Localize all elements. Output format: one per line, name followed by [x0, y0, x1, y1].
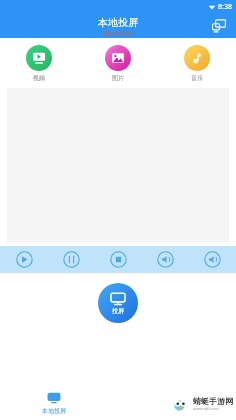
- staticText: 蜻蜓手游网: [193, 396, 233, 406]
- button[interactable]: 视频: [0, 43, 78, 84]
- staticText: 投屏: [112, 307, 124, 315]
- staticText: 音乐: [191, 74, 203, 82]
- button[interactable]: Play: [0, 246, 48, 273]
- button[interactable]: Stop: [95, 246, 142, 273]
- staticText: www.qt6.com: [193, 406, 219, 411]
- staticText: 暂未连接设备: [103, 30, 133, 36]
- button[interactable]: Pause: [48, 246, 95, 273]
- staticText: 视频: [33, 74, 45, 82]
- staticText: 图片: [112, 74, 124, 82]
- staticText: 本地投屏: [98, 16, 138, 29]
- button[interactable]: Volume up: [189, 246, 236, 273]
- staticText: 本地投屏: [42, 407, 66, 415]
- button[interactable]: Volume down: [142, 246, 189, 273]
- button[interactable]: 音乐: [157, 43, 236, 84]
- button[interactable]: 投屏: [98, 283, 138, 323]
- staticText: 8:38: [218, 2, 232, 12]
- button[interactable]: 本地投屏: [42, 391, 66, 415]
- button[interactable]: Cast device: [208, 15, 230, 37]
- button[interactable]: 图片: [78, 43, 157, 84]
